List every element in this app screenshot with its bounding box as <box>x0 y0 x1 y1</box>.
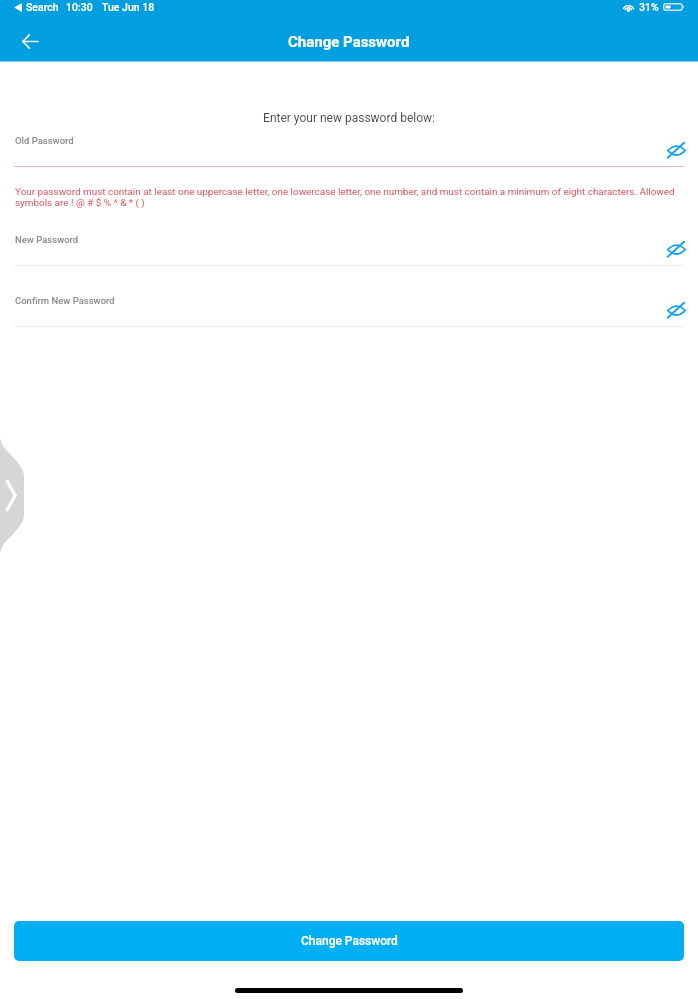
staticText: New Password <box>15 234 79 245</box>
button[interactable]: Show confirm password <box>663 296 689 322</box>
button[interactable]: Show old password <box>663 136 689 162</box>
staticText: Enter your new password below: <box>0 111 698 125</box>
button[interactable]: Old Password <box>14 135 654 167</box>
button[interactable]: New Password <box>14 234 654 266</box>
button[interactable]: Open drawer <box>0 438 24 553</box>
staticText: Change Password <box>288 33 410 51</box>
staticText: Search <box>26 1 59 13</box>
button[interactable]: Confirm New Password <box>14 295 654 327</box>
staticText: Change Password <box>301 934 398 948</box>
staticText: Tue Jun 18 <box>102 1 155 13</box>
staticText: 31% <box>639 1 659 13</box>
staticText: 10:30 <box>66 1 93 13</box>
button[interactable]: Change Password <box>14 921 684 961</box>
staticText: Old Password <box>15 135 74 146</box>
button[interactable]: Show new password <box>663 235 689 261</box>
staticText: Confirm New Password <box>15 295 115 306</box>
button[interactable]: Back <box>13 24 47 58</box>
staticText: Your password must contain at least one … <box>15 186 685 208</box>
